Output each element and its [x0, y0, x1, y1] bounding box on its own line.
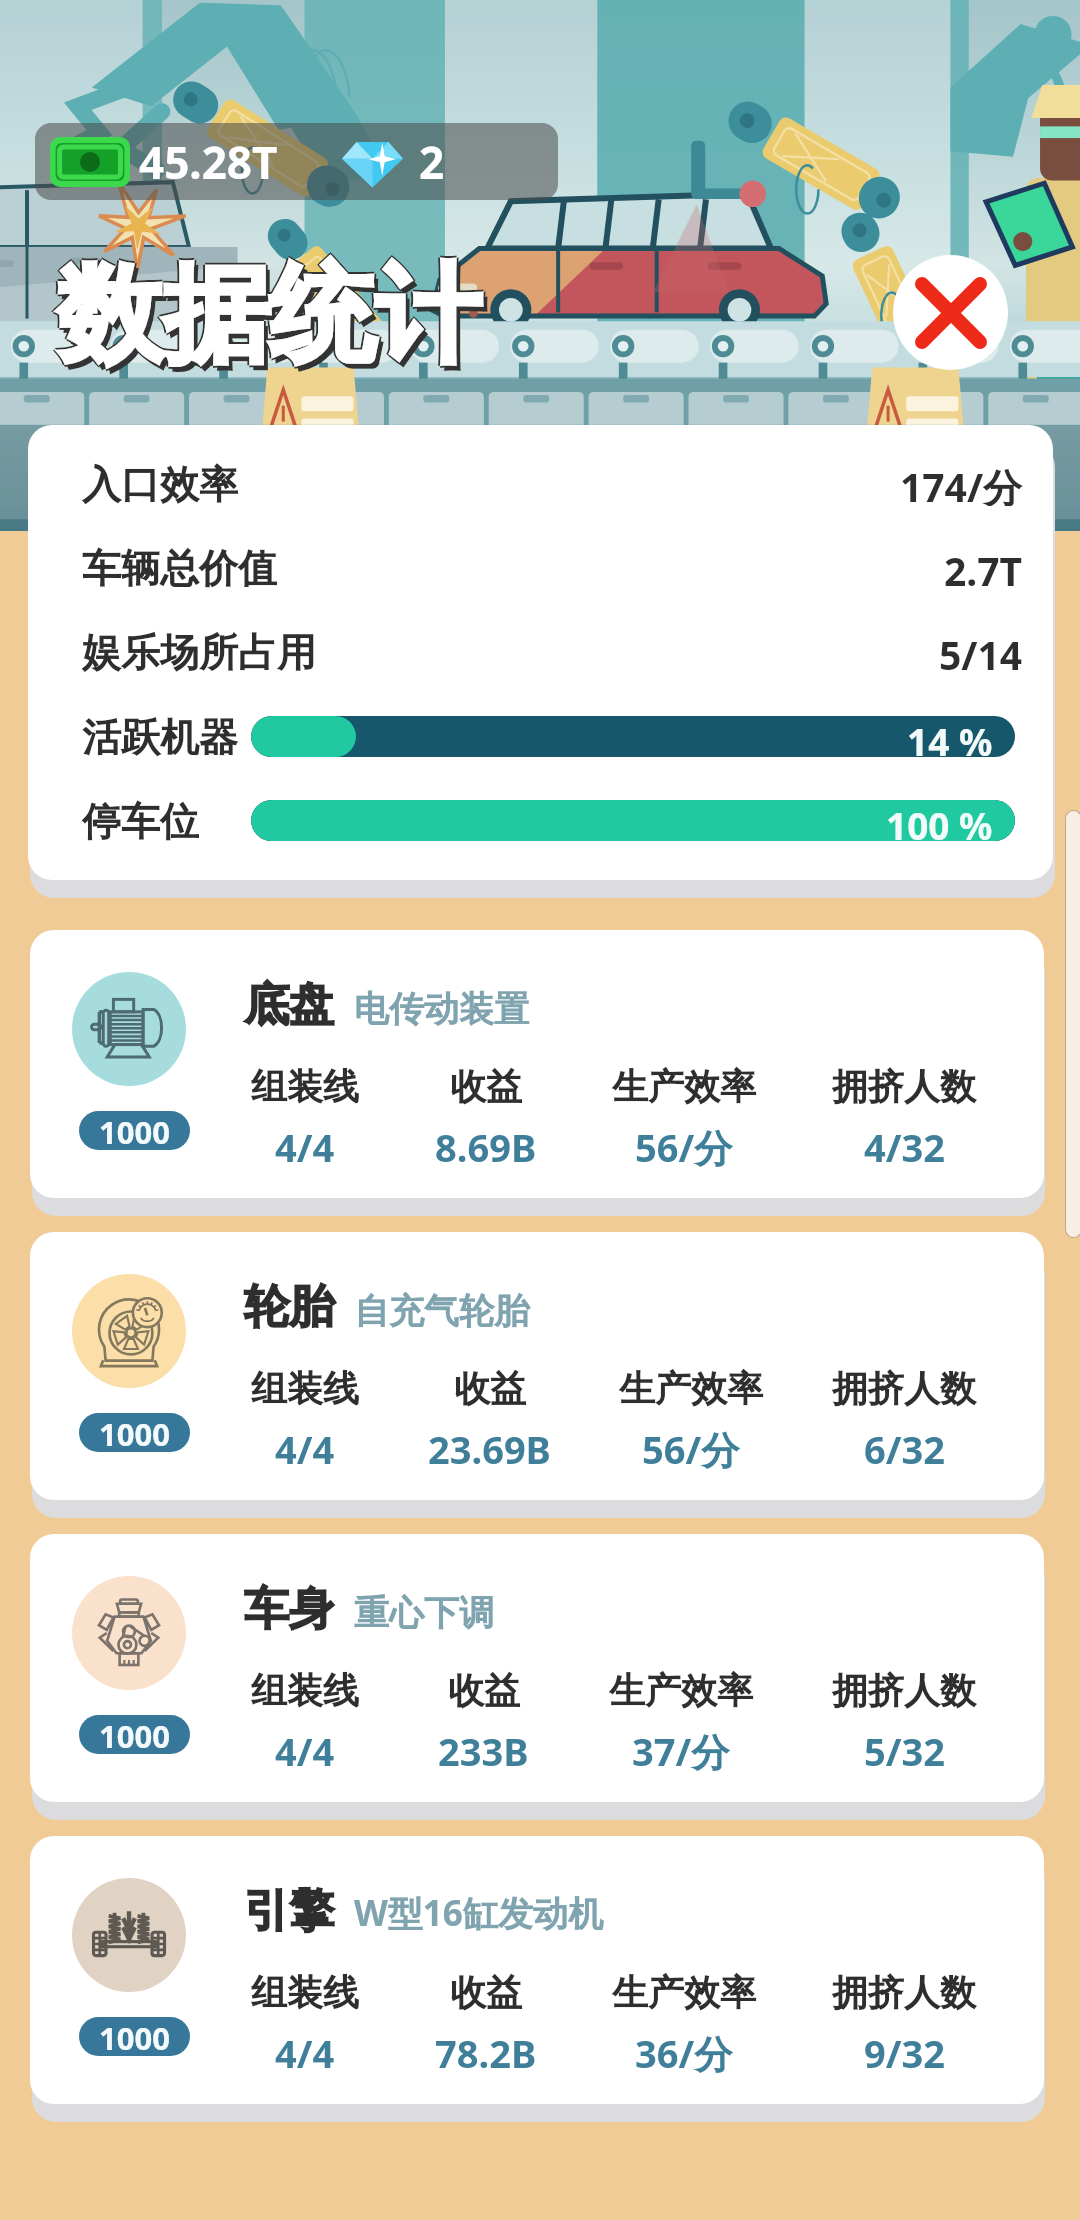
staticText: 233B [438, 1725, 529, 1777]
staticText: 9/32 [864, 2027, 945, 2079]
staticText: 娱乐场所占用 [82, 628, 316, 674]
staticText: 174/分 [900, 460, 1023, 506]
staticText: 收益 [448, 1668, 520, 1713]
staticText: 自充气轮胎 [354, 1289, 529, 1333]
staticText: 组装线 [251, 1064, 359, 1109]
staticText: 拥挤人数 [832, 1366, 976, 1411]
staticText: 组装线 [251, 1366, 359, 1411]
staticText: 收益 [454, 1366, 526, 1411]
staticText: 生产效率 [619, 1366, 763, 1411]
staticText: 停车位 [82, 797, 199, 843]
staticText: 2 [419, 132, 445, 192]
staticText: 56/分 [635, 1121, 733, 1173]
staticText: 78.2B [435, 2027, 537, 2079]
staticText: 生产效率 [612, 1064, 756, 1109]
staticText: W型16缸发动机 [354, 1889, 603, 1937]
staticText: 6/32 [864, 1423, 945, 1475]
staticText: 数据统计 [61, 254, 485, 388]
staticText: 5/32 [864, 1725, 945, 1777]
staticText: 底盘 [244, 977, 334, 1034]
staticText: 拥挤人数 [832, 1970, 976, 2015]
staticText: 组装线 [251, 1970, 359, 2015]
staticText: 收益 [450, 1970, 522, 2015]
staticText: 收益 [450, 1064, 522, 1109]
staticText: 电传动装置 [354, 987, 529, 1031]
staticText: 数据统计 [57, 251, 481, 385]
staticText: 2.7T [944, 544, 1023, 590]
staticText: 车身 [244, 1581, 334, 1638]
staticText: 引擎 [244, 1883, 334, 1940]
staticText: 23.69B [428, 1423, 551, 1475]
staticText: 1000 [99, 1715, 170, 1754]
staticText: 数据统计 [55, 249, 479, 383]
staticText: 4/4 [275, 2027, 335, 2079]
staticText: 56/分 [642, 1423, 740, 1475]
staticText: 生产效率 [609, 1668, 753, 1713]
staticText: 生产效率 [612, 1970, 756, 2015]
staticText: 1000 [99, 1111, 170, 1150]
staticText: 4/4 [275, 1121, 335, 1173]
staticText: 拥挤人数 [832, 1064, 976, 1109]
staticText: 车辆总价值 [82, 544, 277, 590]
staticText: 轮胎 [244, 1279, 334, 1336]
staticText: 拥挤人数 [832, 1668, 976, 1713]
button[interactable]: 1000 [30, 1534, 1044, 1802]
staticText: 36/分 [635, 2027, 733, 2079]
staticText: 数据统计 [59, 249, 483, 383]
staticText: 100 % [886, 800, 993, 841]
staticText: 1000 [99, 2017, 170, 2056]
staticText: 数据统计 [57, 247, 481, 381]
staticText: 14 % [907, 716, 993, 757]
staticText: 活跃机器 [82, 713, 238, 759]
button[interactable]: 1000 [30, 1232, 1044, 1500]
button[interactable]: 45.28T [35, 123, 558, 200]
staticText: 4/4 [275, 1423, 335, 1475]
staticText: 组装线 [251, 1668, 359, 1713]
staticText: 37/分 [632, 1725, 730, 1777]
button[interactable]: 1000 [30, 930, 1044, 1198]
staticText: 4/32 [864, 1121, 945, 1173]
staticText: 数据统计 [57, 249, 481, 383]
staticText: 4/4 [275, 1725, 335, 1777]
staticText: 5/14 [939, 628, 1023, 674]
staticText: 8.69B [435, 1121, 537, 1173]
staticText: 重心下调 [354, 1591, 494, 1635]
staticText: 1000 [99, 1413, 170, 1452]
button[interactable]: 1000 [30, 1836, 1044, 2104]
staticText: 入口效率 [82, 460, 238, 506]
staticText: 45.28T [139, 132, 278, 192]
button[interactable]: Close [893, 255, 1008, 370]
